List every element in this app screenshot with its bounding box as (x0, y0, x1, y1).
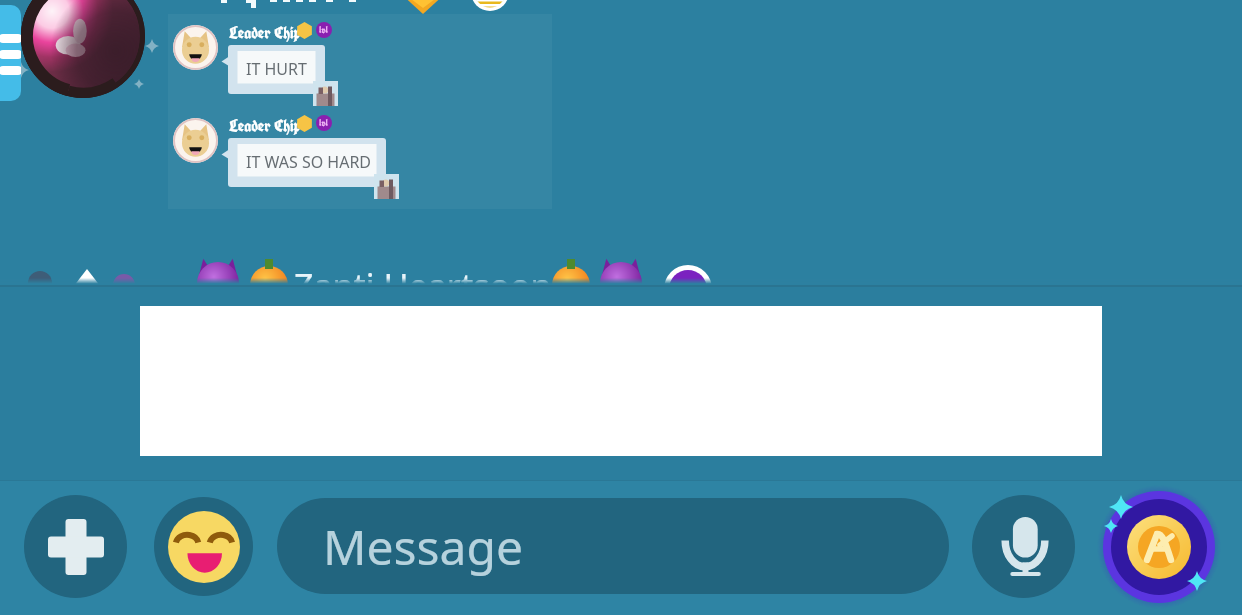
staticText: Message (323, 514, 524, 579)
staticText: Leader Chip (229, 116, 301, 137)
staticText: IT WAS SO HARD (246, 151, 372, 173)
staticText: Leader Chip (229, 23, 301, 44)
button[interactable]: Leader Chip profile (173, 25, 218, 70)
button[interactable] (220, 138, 388, 188)
button[interactable]: Emoji (154, 497, 253, 596)
button[interactable]: Add attachment (24, 495, 127, 598)
staticText: lvl (319, 24, 329, 36)
button[interactable] (220, 45, 327, 95)
button[interactable]: Amino coins (1099, 487, 1219, 607)
staticText: IT HURT (246, 58, 307, 80)
button[interactable]: Record voice message (972, 495, 1075, 598)
button[interactable]: Zanti Heartsoon (0, 253, 1242, 285)
staticText: Zanti Heartsoon (294, 263, 552, 295)
staticText: lvl (319, 117, 329, 129)
button[interactable]: Community profile picture (21, 0, 145, 98)
button[interactable]: Menu (0, 5, 21, 101)
button[interactable]: Message (277, 498, 949, 594)
button[interactable]: Leader Chip profile (173, 118, 218, 163)
